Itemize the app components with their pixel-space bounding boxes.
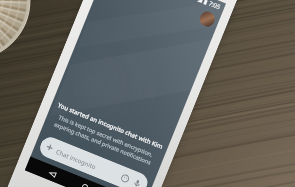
staticText: 7:05 <box>207 0 221 11</box>
staticText: Chat incognito <box>55 147 98 170</box>
button[interactable]: Home <box>75 177 95 187</box>
staticText: You started an incognito chat with Kim <box>57 100 164 150</box>
staticText: This is kept top secret with encryption,… <box>48 111 160 168</box>
other: Voice message <box>132 178 142 187</box>
button[interactable]: Back <box>42 163 63 183</box>
button[interactable]: Kim profile photo <box>197 9 217 29</box>
other: Emoji <box>120 173 130 184</box>
button[interactable]: Chat incognito <box>37 134 151 187</box>
